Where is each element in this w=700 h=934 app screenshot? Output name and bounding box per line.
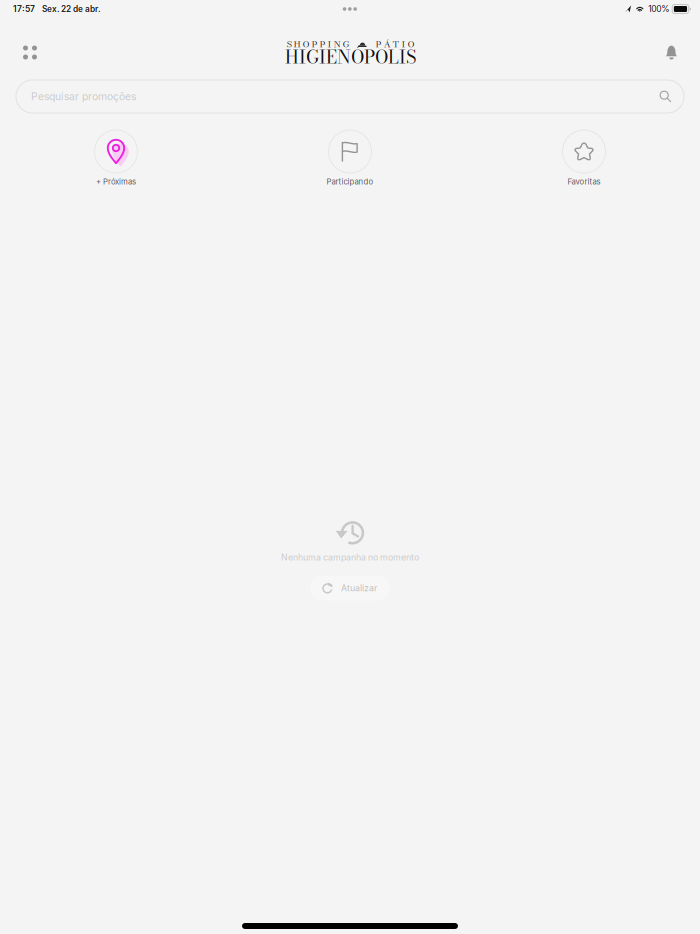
staticText: Pesquisar promoções (31, 90, 136, 103)
button[interactable]: Participando (295, 130, 405, 186)
staticText: Atualizar (341, 583, 377, 593)
button[interactable]: + Próximas (61, 130, 171, 186)
staticText: 100% (648, 4, 669, 14)
staticText: P Á T I O (375, 37, 414, 51)
button[interactable]: Notificações (650, 32, 692, 70)
button[interactable]: Menu (9, 32, 51, 70)
staticText: + Próximas (96, 177, 136, 186)
button[interactable]: Pesquisar promoções (16, 80, 684, 113)
staticText: Favoritas (567, 177, 600, 186)
staticText: S H O P P I N G (286, 37, 349, 51)
staticText: Sex. 22 de abr. (42, 4, 101, 14)
button[interactable]: Atualizar (310, 575, 390, 600)
staticText: Nenhuma campanha no momento (281, 552, 419, 562)
staticText: 17:57 (13, 4, 35, 14)
staticText: HIGIENÓPOLIS (285, 43, 416, 71)
button[interactable]: Favoritas (529, 130, 639, 186)
staticText: Participando (326, 177, 373, 186)
